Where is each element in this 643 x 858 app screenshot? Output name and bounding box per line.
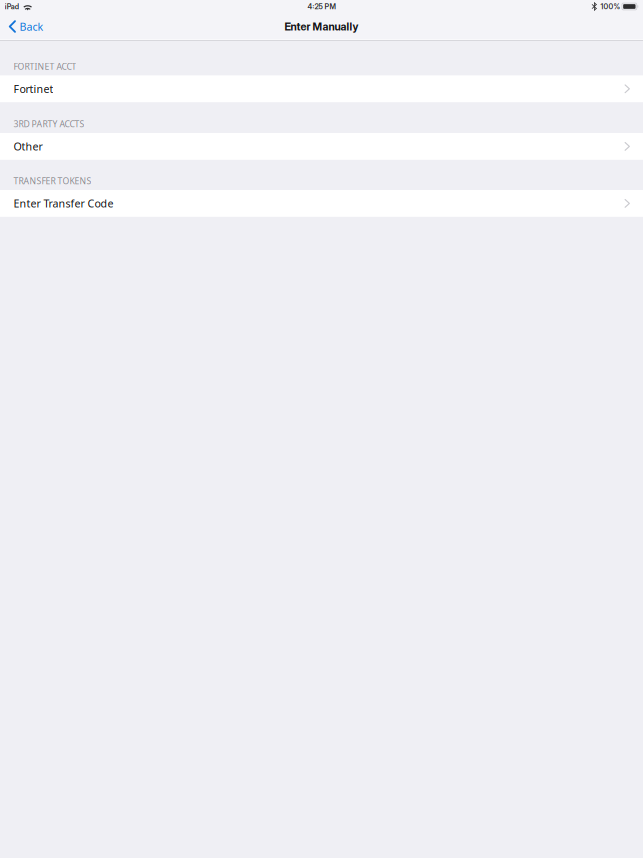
staticText: FORTINET ACCT (13, 60, 76, 72)
button[interactable]: Other (0, 133, 643, 160)
button[interactable]: Back (0, 13, 53, 40)
staticText: Back (19, 19, 43, 34)
staticText: Enter Manually (284, 20, 358, 33)
staticText: Fortinet (13, 81, 53, 96)
button[interactable]: Enter Transfer Code (0, 190, 643, 217)
staticText: 4:25 PM (307, 2, 335, 11)
staticText: TRANSFER TOKENS (13, 175, 91, 187)
button[interactable]: Fortinet (0, 75, 643, 102)
staticText: 3RD PARTY ACCTS (13, 118, 84, 130)
staticText: Enter Transfer Code (13, 196, 113, 211)
staticText: 100% (600, 2, 620, 11)
staticText: iPad (5, 2, 19, 11)
staticText: Other (13, 139, 42, 154)
